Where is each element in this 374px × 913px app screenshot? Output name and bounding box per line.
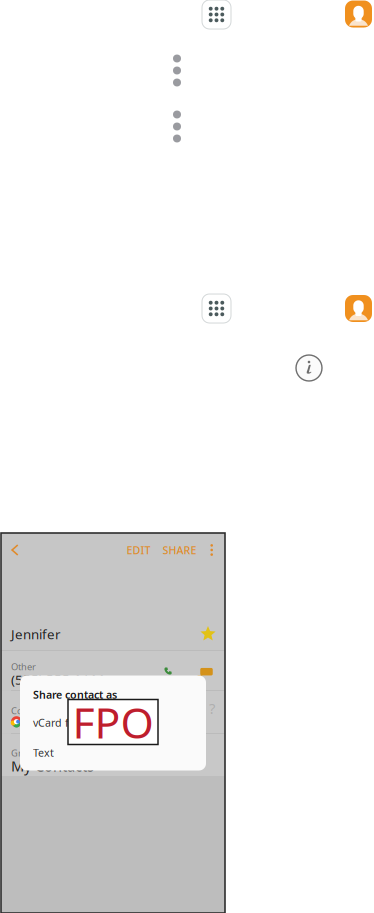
staticText: EDIT — [126, 543, 150, 557]
staticText: My Contacts — [11, 756, 94, 775]
staticText: (555) 555-0100 — [11, 671, 106, 688]
button[interactable]: Back — [4, 539, 26, 561]
staticText: Share contact as — [33, 687, 117, 702]
staticText: Other — [11, 660, 36, 673]
button[interactable]: EDIT — [126, 539, 150, 561]
button[interactable]: SHARE — [150, 539, 196, 561]
staticText: vCard file — [33, 716, 80, 730]
button[interactable]: More options — [196, 539, 225, 561]
staticText: FPO — [72, 694, 153, 750]
button[interactable]: Text — [20, 746, 206, 760]
staticText: Jennifer — [11, 625, 61, 643]
staticText: Text — [33, 746, 54, 760]
staticText: ? — [209, 698, 215, 718]
staticText: SHARE — [162, 543, 196, 557]
staticText: Google — [27, 713, 72, 730]
staticText: Groups — [11, 747, 44, 759]
button[interactable]: vCard file — [20, 716, 206, 730]
staticText: Contact info — [11, 704, 63, 717]
